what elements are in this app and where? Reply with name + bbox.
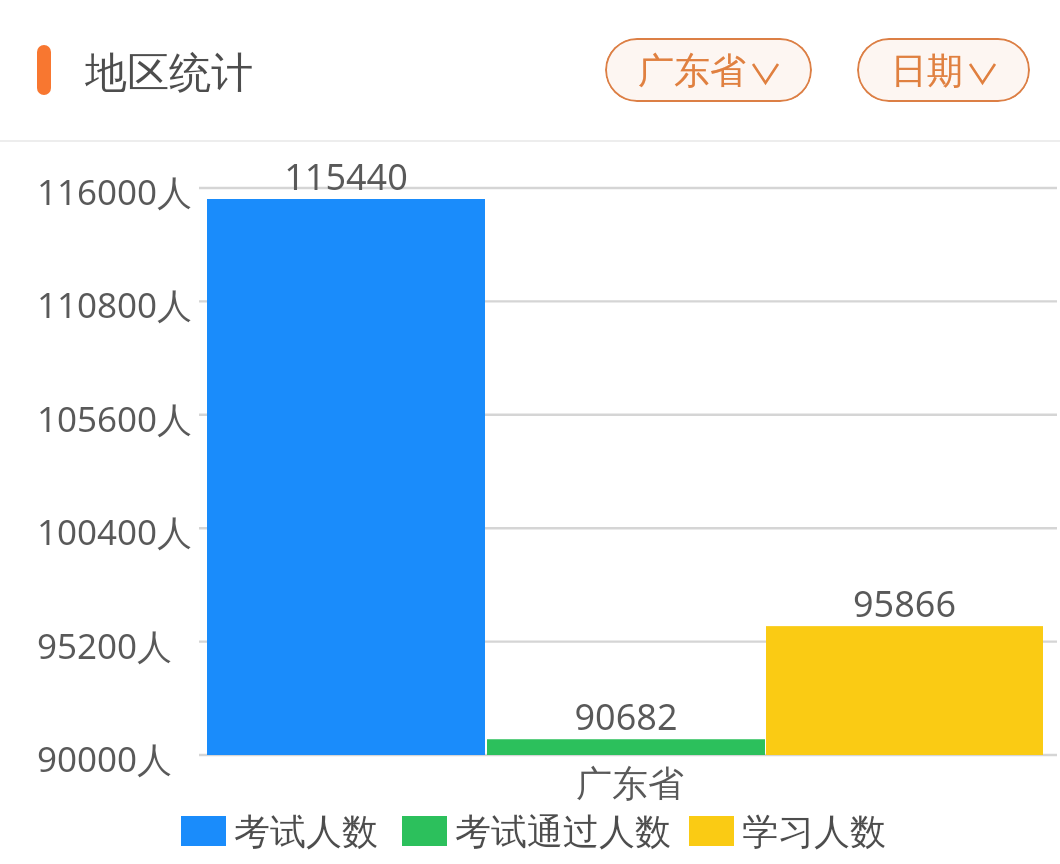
- button[interactable]: 广东省: [605, 38, 812, 102]
- button[interactable]: 考试人数: [181, 808, 378, 854]
- staticText: 广东省: [530, 761, 730, 806]
- staticText: 110800人: [37, 281, 193, 329]
- staticText: 105600人: [37, 395, 193, 443]
- button[interactable]: 考试通过人数: [402, 808, 671, 854]
- other: Expand 广东省: [752, 55, 779, 85]
- staticText: 90000人: [37, 735, 173, 783]
- staticText: 日期: [891, 48, 963, 93]
- staticText: 考试人数: [234, 809, 378, 854]
- other: Expand 日期: [969, 55, 996, 85]
- staticText: 90682: [487, 692, 765, 741]
- staticText: 地区统计: [85, 47, 253, 100]
- button[interactable]: 日期: [857, 38, 1030, 102]
- staticText: 95200人: [37, 622, 173, 670]
- button[interactable]: 学习人数: [689, 808, 886, 854]
- staticText: 116000人: [37, 168, 193, 216]
- staticText: 115440: [207, 152, 485, 201]
- staticText: 100400人: [37, 508, 193, 556]
- staticText: 95866: [766, 579, 1043, 628]
- staticText: 考试通过人数: [455, 809, 671, 854]
- staticText: 广东省: [638, 48, 746, 93]
- staticText: 学习人数: [742, 809, 886, 854]
